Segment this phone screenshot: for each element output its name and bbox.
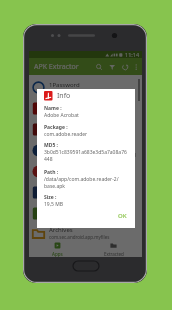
staticText: 448 <box>44 156 53 163</box>
button[interactable]: Extracted <box>85 240 142 257</box>
button[interactable]: Archives <box>29 224 142 240</box>
staticText: com.sec.android.app.myfiles <box>49 234 110 240</box>
button[interactable]: AnyDesk <box>29 182 142 203</box>
button[interactable]: More options <box>131 62 141 72</box>
staticText: 1Password <box>49 81 80 89</box>
staticText: com.antivirus <box>49 173 78 179</box>
staticText: Package : <box>44 124 68 131</box>
staticText: Amazon <box>49 123 72 131</box>
staticText: com.amazon.mShop.android <box>49 131 111 137</box>
button[interactable]: Refresh <box>118 60 131 73</box>
staticText: Adobe Acrobat <box>44 112 79 119</box>
staticText: base.apk <box>44 183 65 190</box>
staticText: Archives <box>49 226 73 234</box>
staticText: com.google.android.projection.gearhead <box>49 152 136 158</box>
staticText: Size : <box>44 194 57 201</box>
staticText: 3b0d51c839591a683e3d5a7a08a76 <box>44 149 127 156</box>
button[interactable]: Search <box>92 60 105 73</box>
staticText: Adobe Acrobat <box>49 102 91 110</box>
staticText: Apps <box>52 251 63 257</box>
staticText: 19,5 MB <box>44 201 64 208</box>
button[interactable]: 1Password <box>29 77 142 98</box>
staticText: com.agilebits.onepassword <box>49 89 107 95</box>
button[interactable]: AntiVirus <box>29 161 142 182</box>
staticText: Info <box>57 91 71 101</box>
button[interactable]: Filter <box>105 60 118 73</box>
staticText: 11:14 <box>125 51 140 58</box>
staticText: Name : <box>44 105 62 112</box>
staticText: com.anydesk.anydeskandroid <box>49 194 112 200</box>
staticText: Android Auto <box>49 144 87 152</box>
button[interactable]: OK <box>114 210 131 222</box>
staticText: AnyDesk <box>49 186 74 194</box>
button[interactable]: Apps <box>29 240 85 257</box>
staticText: /data/app/com.adobe.reader-2/ <box>44 176 119 183</box>
staticText: com.adobe.reader <box>44 131 88 138</box>
button[interactable]: Amazon <box>29 119 142 140</box>
button[interactable]: App Store <box>29 203 142 224</box>
button[interactable]: Android Auto <box>29 140 142 161</box>
staticText: com.sec.android.app.samsungapps <box>49 215 124 221</box>
staticText: OK <box>118 212 127 220</box>
staticText: MD5 : <box>44 142 58 149</box>
staticText: Extracted <box>104 251 124 257</box>
staticText: com.adobe.reader <box>49 110 88 116</box>
staticText: Path : <box>44 169 59 176</box>
staticText: APK Extractor <box>34 62 92 72</box>
staticText: AntiVirus <box>49 165 75 173</box>
button[interactable]: Adobe Acrobat <box>29 98 142 119</box>
